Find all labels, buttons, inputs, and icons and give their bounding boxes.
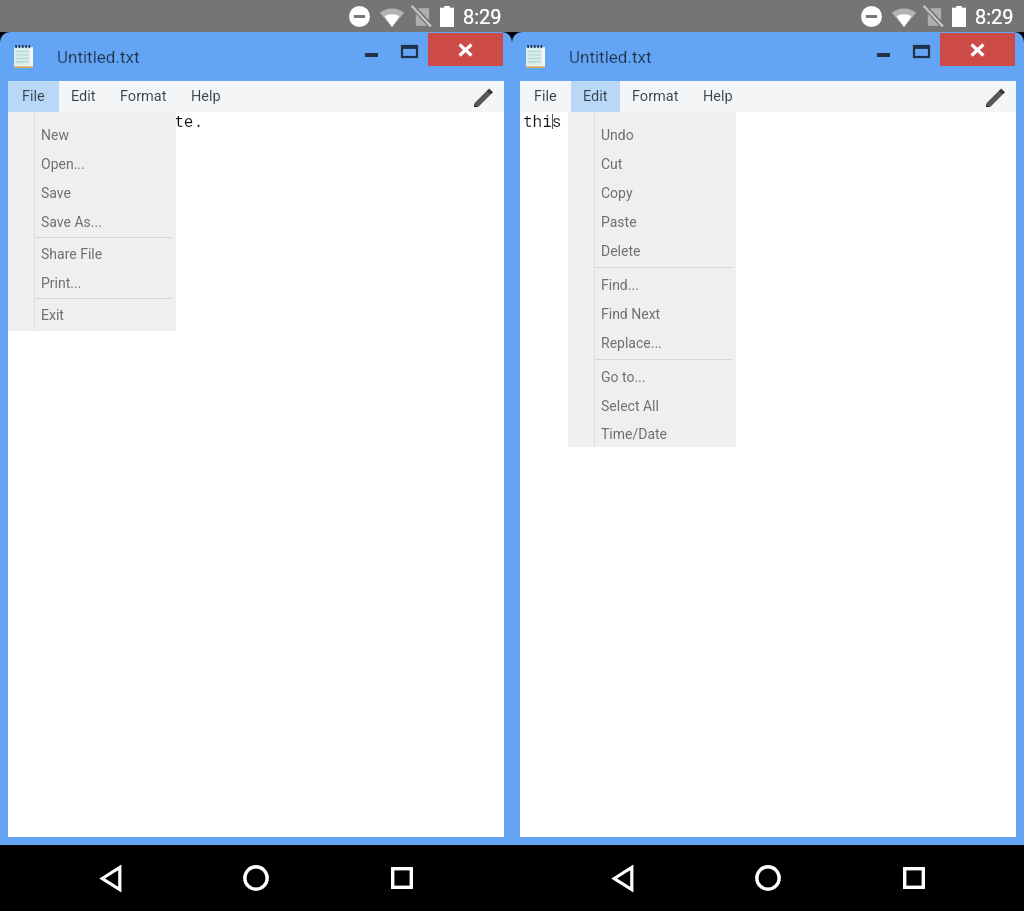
staticText: File [22,88,45,105]
button[interactable]: Replace... [568,328,736,357]
button[interactable]: Print... [8,268,176,297]
staticText: Format [632,88,679,105]
button[interactable]: Delete [568,236,736,265]
staticText: Open... [41,156,85,172]
staticText: Format [120,88,167,105]
button[interactable]: Find Next [568,299,736,328]
button[interactable]: Edit note [980,82,1010,112]
button[interactable]: File [520,81,571,112]
button[interactable]: Cut [568,149,736,178]
button[interactable]: Edit note [468,82,498,112]
staticText: Find Next [601,306,661,322]
button[interactable]: Back [87,854,135,902]
staticText: File [534,88,557,105]
button[interactable]: Recent apps [378,854,426,902]
staticText: Help [191,88,221,105]
button[interactable]: Minimize [352,38,390,72]
button[interactable]: Close [428,33,503,66]
staticText: Save As... [41,214,102,230]
staticText: This is just a note. [11,110,204,131]
staticText: 8:29 [463,5,502,28]
button[interactable]: Edit [571,81,620,112]
staticText: Exit [41,307,64,323]
button[interactable]: Help [179,81,233,112]
button[interactable]: File [8,81,59,112]
staticText: Paste [601,214,637,230]
staticText: Untitled.txt [569,47,652,67]
staticText: Save [41,185,71,201]
staticText: Print... [41,275,82,291]
button[interactable]: Exit [8,300,176,329]
button[interactable]: Share File [8,239,176,268]
button[interactable]: Save [8,178,176,207]
staticText: Time/Date [601,426,668,442]
staticText: Undo [601,127,634,143]
button[interactable]: Format [108,81,179,112]
staticText: New [41,127,69,143]
staticText: Select All [601,398,659,414]
button[interactable]: Select All [568,391,736,420]
button[interactable]: Edit [59,81,108,112]
button[interactable]: Minimize [864,38,902,72]
button[interactable]: Home [232,854,280,902]
button[interactable]: Maximize [902,34,940,68]
button[interactable]: Undo [568,120,736,149]
button[interactable]: Open... [8,149,176,178]
button[interactable]: Save As... [8,207,176,236]
button[interactable]: Copy [568,178,736,207]
staticText: Find... [601,277,639,293]
button[interactable]: Format [620,81,691,112]
button[interactable]: Help [691,81,745,112]
button[interactable]: Recent apps [890,854,938,902]
button[interactable]: Paste [568,207,736,236]
staticText: Edit [583,88,608,105]
button[interactable]: New [8,120,176,149]
staticText: this [523,110,562,131]
staticText: Replace... [601,335,662,351]
button[interactable]: Go to... [568,362,736,391]
staticText: Edit [71,88,96,105]
staticText: Share File [41,246,103,262]
staticText: Cut [601,156,623,172]
staticText: Help [703,88,733,105]
staticText: Untitled.txt [57,47,140,67]
button[interactable]: Maximize [390,34,428,68]
button[interactable]: Time/Date [568,420,736,447]
staticText: 8:29 [975,5,1014,28]
button[interactable]: Back [599,854,647,902]
staticText: Delete [601,243,641,259]
button[interactable]: Close [940,33,1015,66]
staticText: Go to... [601,369,646,385]
staticText: Copy [601,185,633,201]
button[interactable]: Home [744,854,792,902]
button[interactable]: Find... [568,270,736,299]
